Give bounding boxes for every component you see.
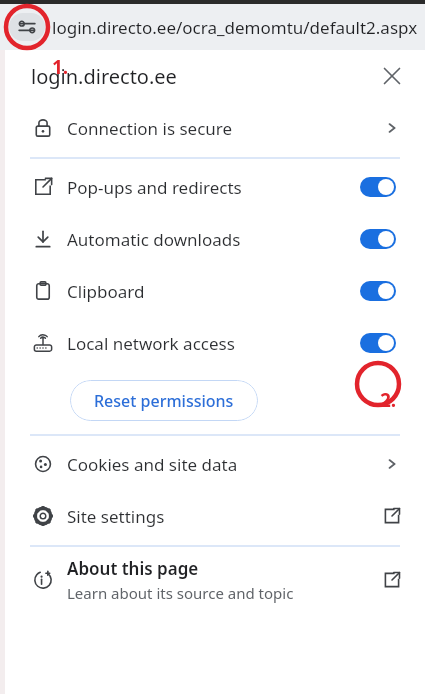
button[interactable]: Site information xyxy=(9,13,45,41)
button[interactable]: Pop-ups and redirects xyxy=(5,161,425,213)
button[interactable]: Automatic downloads xyxy=(5,213,425,265)
button[interactable]: Reset permissions xyxy=(70,380,258,421)
staticText: 2. xyxy=(380,387,397,413)
button[interactable]: Site settings xyxy=(5,490,425,542)
button[interactable]: Cookies and site data xyxy=(5,438,425,490)
staticText: Cookies and site data xyxy=(67,453,238,476)
staticText: Pop-ups and redirects xyxy=(67,176,242,199)
staticText: Automatic downloads xyxy=(67,228,241,251)
button[interactable]: Clipboard toggle xyxy=(360,281,396,301)
button[interactable]: About this page xyxy=(5,549,425,611)
button[interactable]: Clipboard xyxy=(5,265,425,317)
button[interactable]: Close xyxy=(375,59,409,93)
staticText: Connection is secure xyxy=(67,117,233,140)
button[interactable]: Local network access xyxy=(5,317,425,369)
staticText: 1. xyxy=(52,54,69,80)
staticText: About this page xyxy=(67,557,199,580)
staticText: Local network access xyxy=(67,332,235,355)
button[interactable]: Local network access toggle xyxy=(360,333,396,353)
staticText: Learn about its source and topic xyxy=(67,583,294,603)
button[interactable]: Connection is secure xyxy=(5,102,425,154)
staticText: login.directo.ee xyxy=(31,63,177,90)
button[interactable]: Pop-ups and redirects toggle xyxy=(360,177,396,197)
staticText: Clipboard xyxy=(67,280,145,303)
staticText: login.directo.ee/ocra_demomtu/default2.a… xyxy=(52,16,418,39)
staticText: Reset permissions xyxy=(94,390,234,412)
staticText: Site settings xyxy=(67,505,165,528)
button[interactable]: Automatic downloads toggle xyxy=(360,229,396,249)
